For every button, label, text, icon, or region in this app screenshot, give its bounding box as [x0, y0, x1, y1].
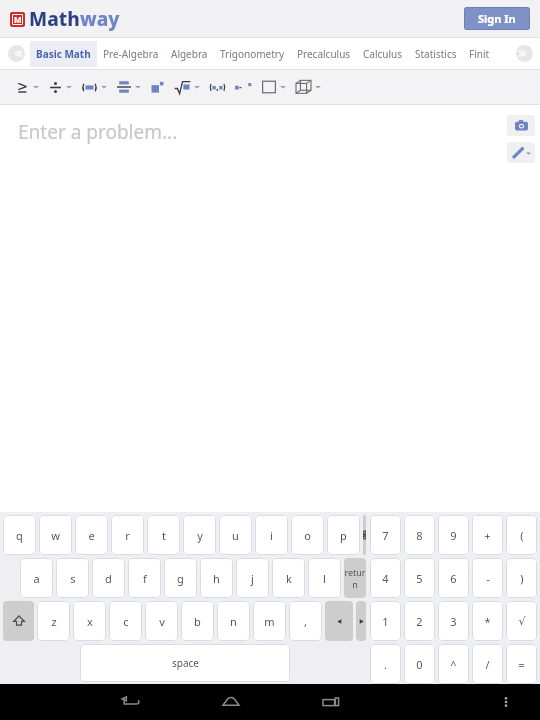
- button[interactable]: ^: [438, 644, 469, 684]
- staticText: e: [88, 528, 95, 543]
- button[interactable]: ): [506, 558, 537, 598]
- staticText: i: [270, 528, 273, 543]
- button[interactable]: t: [147, 515, 180, 555]
- button[interactable]: Cursor left: [325, 601, 353, 641]
- staticText: 5: [416, 571, 423, 586]
- button[interactable]: .: [370, 644, 401, 684]
- button[interactable]: Back: [111, 684, 151, 720]
- button[interactable]: Math symbol: [206, 72, 232, 102]
- button[interactable]: g: [164, 558, 197, 598]
- button[interactable]: b: [181, 601, 214, 641]
- button[interactable]: *: [472, 601, 503, 641]
- staticText: f: [143, 571, 147, 586]
- button[interactable]: Statistics: [409, 41, 463, 67]
- staticText: y: [197, 528, 203, 543]
- button[interactable]: h: [200, 558, 233, 598]
- button[interactable]: Precalculus: [291, 41, 357, 67]
- button[interactable]: Shift: [3, 601, 34, 641]
- button[interactable]: Math symbol: [171, 72, 206, 102]
- button[interactable]: (: [506, 515, 537, 555]
- button[interactable]: Draw a problem: [507, 142, 535, 163]
- button[interactable]: j: [236, 558, 269, 598]
- button[interactable]: 0: [404, 644, 435, 684]
- button[interactable]: p: [327, 515, 360, 555]
- button[interactable]: Recent apps: [311, 684, 351, 720]
- button[interactable]: 2: [404, 601, 435, 641]
- button[interactable]: Math symbol: [78, 72, 113, 102]
- staticText: k: [286, 571, 292, 586]
- button[interactable]: s: [56, 558, 89, 598]
- button[interactable]: return: [344, 558, 366, 598]
- button[interactable]: Math symbol: [12, 72, 45, 102]
- button[interactable]: y: [183, 515, 216, 555]
- staticText: d: [105, 571, 112, 586]
- button[interactable]: z: [37, 601, 70, 641]
- button[interactable]: n: [217, 601, 250, 641]
- button[interactable]: Basic Math: [30, 41, 97, 67]
- button[interactable]: Math symbol: [258, 72, 292, 102]
- staticText: g: [177, 571, 184, 586]
- button[interactable]: d: [92, 558, 125, 598]
- button[interactable]: 9: [438, 515, 469, 555]
- button[interactable]: 4: [370, 558, 401, 598]
- button[interactable]: 7: [370, 515, 401, 555]
- button[interactable]: 8: [404, 515, 435, 555]
- button[interactable]: Home: [211, 684, 251, 720]
- staticText: Algebra: [171, 47, 208, 61]
- button[interactable]: 5: [404, 558, 435, 598]
- staticText: l: [323, 571, 326, 586]
- button[interactable]: /: [472, 644, 503, 684]
- staticText: v: [159, 614, 165, 629]
- button[interactable]: f: [128, 558, 161, 598]
- button[interactable]: v: [145, 601, 178, 641]
- button[interactable]: w: [39, 515, 72, 555]
- button[interactable]: Math symbol: [113, 72, 147, 102]
- staticText: c: [123, 614, 129, 629]
- button[interactable]: √: [506, 601, 537, 641]
- button[interactable]: -: [472, 558, 503, 598]
- button[interactable]: 6: [438, 558, 469, 598]
- button[interactable]: Sign In: [464, 7, 530, 30]
- button[interactable]: l: [308, 558, 341, 598]
- button[interactable]: 1: [370, 601, 401, 641]
- button[interactable]: 3: [438, 601, 469, 641]
- staticText: -: [486, 571, 490, 586]
- button[interactable]: Math symbol: [147, 72, 171, 102]
- staticText: Enter a problem...: [18, 119, 178, 145]
- button[interactable]: Trigonometry: [214, 41, 291, 67]
- button[interactable]: Math symbol: [232, 72, 258, 102]
- button[interactable]: Scroll right: [516, 45, 533, 62]
- button[interactable]: r: [111, 515, 144, 555]
- button[interactable]: Pre-Algebra: [97, 41, 165, 67]
- button[interactable]: c: [109, 601, 142, 641]
- staticText: z: [51, 614, 57, 629]
- button[interactable]: o: [291, 515, 324, 555]
- staticText: √: [518, 615, 526, 628]
- button[interactable]: ,: [289, 601, 322, 641]
- button[interactable]: Math symbol: [45, 72, 78, 102]
- button[interactable]: +: [472, 515, 503, 555]
- button[interactable]: u: [219, 515, 252, 555]
- button[interactable]: x: [73, 601, 106, 641]
- button[interactable]: k: [272, 558, 305, 598]
- button[interactable]: space: [80, 644, 290, 682]
- button[interactable]: Math symbol: [292, 72, 327, 102]
- staticText: 1: [382, 614, 389, 629]
- button[interactable]: Enter a problem...: [18, 119, 178, 145]
- button[interactable]: =: [506, 644, 537, 684]
- button[interactable]: More options: [486, 684, 526, 720]
- staticText: q: [16, 528, 23, 543]
- button[interactable]: Take a photo of a problem: [507, 115, 535, 136]
- button[interactable]: Finit: [463, 41, 496, 67]
- button[interactable]: Calculus: [357, 41, 409, 67]
- button[interactable]: q: [3, 515, 36, 555]
- button[interactable]: Scroll left: [8, 45, 25, 62]
- button[interactable]: i: [255, 515, 288, 555]
- button[interactable]: e: [75, 515, 108, 555]
- button[interactable]: Backspace: [363, 515, 366, 555]
- button[interactable]: m: [253, 601, 286, 641]
- button[interactable]: Algebra: [165, 41, 214, 67]
- staticText: m: [264, 614, 275, 629]
- button[interactable]: a: [20, 558, 53, 598]
- button[interactable]: Cursor right: [356, 601, 366, 641]
